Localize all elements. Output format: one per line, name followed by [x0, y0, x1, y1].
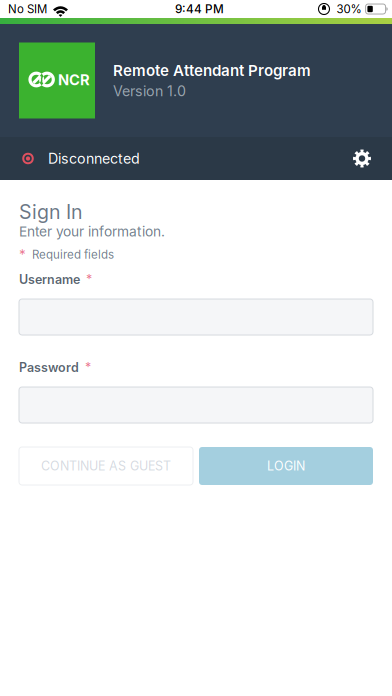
staticText: Disconnected: [48, 150, 140, 167]
staticText: Enter your information.: [19, 223, 165, 240]
staticText: Version 1.0: [113, 82, 186, 100]
staticText: No SIM: [8, 2, 47, 16]
staticText: 30%: [336, 2, 361, 16]
staticText: *: [19, 246, 26, 262]
staticText: LOGIN: [267, 458, 305, 474]
staticText: CONTINUE AS GUEST: [41, 458, 171, 474]
staticText: Username: [19, 272, 80, 287]
staticText: *: [86, 272, 92, 287]
staticText: *: [85, 360, 91, 375]
staticText: Remote Attendant Program: [113, 61, 311, 79]
staticText: 9:44 PM: [175, 2, 224, 16]
button[interactable]: LOGIN: [199, 447, 373, 485]
staticText: Sign In: [19, 200, 83, 224]
staticText: Required fields: [32, 247, 114, 261]
staticText: NCR: [58, 71, 90, 89]
staticText: Password: [19, 360, 79, 375]
button[interactable]: Settings: [342, 138, 382, 178]
button[interactable]: CONTINUE AS GUEST: [19, 447, 193, 485]
